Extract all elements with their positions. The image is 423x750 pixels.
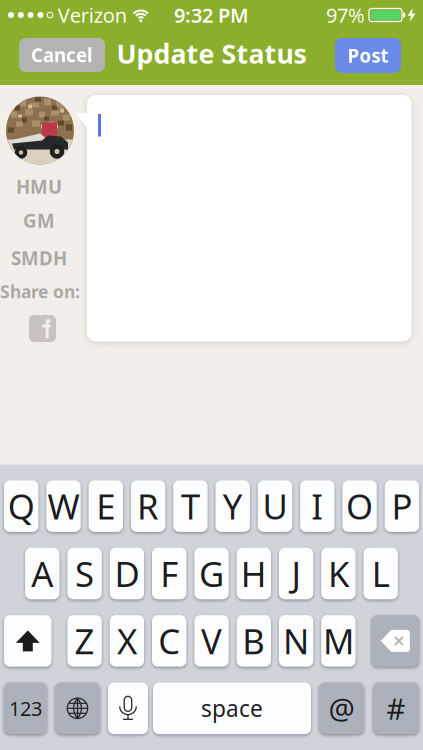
staticText: E <box>96 483 115 529</box>
staticText: F <box>160 550 178 596</box>
button[interactable]: SMDH <box>0 248 78 268</box>
button[interactable]: Y <box>215 480 250 532</box>
staticText: Update Status <box>116 36 306 71</box>
button[interactable]: # <box>373 682 419 734</box>
button[interactable]: I <box>300 480 334 532</box>
staticText: A <box>31 550 53 596</box>
staticText: M <box>323 618 354 664</box>
staticText: W <box>47 483 79 529</box>
button[interactable]: HMU <box>0 176 78 196</box>
button[interactable]: R <box>131 480 165 532</box>
staticText: GM <box>23 208 55 233</box>
button[interactable]: G <box>194 548 229 599</box>
button[interactable]: 123 <box>4 682 47 734</box>
staticText: 9:32 PM <box>174 2 249 28</box>
button[interactable]: GM <box>0 210 78 230</box>
button[interactable]: N <box>279 615 313 667</box>
staticText: I <box>311 483 323 529</box>
button[interactable]: U <box>258 480 292 532</box>
button[interactable]: Cancel <box>19 38 105 72</box>
button[interactable]: Profile photo <box>6 96 74 164</box>
staticText: K <box>328 550 349 596</box>
staticText: SMDH <box>11 246 67 270</box>
button[interactable]: P <box>385 480 419 532</box>
staticText: U <box>262 483 287 529</box>
staticText: O <box>346 483 373 529</box>
staticText: @ <box>328 689 354 728</box>
staticText: Cancel <box>31 43 93 67</box>
button[interactable]: O <box>342 480 377 532</box>
staticText: G <box>199 550 224 596</box>
staticText: # <box>386 689 405 728</box>
staticText: P <box>391 483 412 529</box>
button[interactable]: L <box>363 548 398 599</box>
staticText: J <box>292 550 301 596</box>
button[interactable]: Z <box>67 615 102 667</box>
button[interactable]: Next keyboard <box>55 682 100 734</box>
button[interactable]: Status text <box>87 95 411 341</box>
staticText: S <box>75 550 94 596</box>
button[interactable]: Post <box>335 38 401 73</box>
button[interactable]: Q <box>4 480 38 532</box>
button[interactable]: Share on Facebook <box>29 315 56 342</box>
staticText: T <box>181 483 200 529</box>
button[interactable]: V <box>194 615 229 667</box>
button[interactable]: B <box>237 615 271 667</box>
button[interactable]: D <box>110 548 144 599</box>
button[interactable]: E <box>89 480 123 532</box>
button[interactable]: K <box>321 548 356 599</box>
staticText: 97% <box>326 2 365 28</box>
button[interactable]: A <box>25 548 59 599</box>
button[interactable]: Dictate <box>108 682 148 734</box>
staticText: Share on: <box>0 280 80 303</box>
staticText: B <box>242 618 265 664</box>
staticText: Verizon <box>58 2 127 28</box>
button[interactable]: S <box>67 548 102 599</box>
button[interactable]: M <box>321 615 356 667</box>
staticText: R <box>137 483 159 529</box>
button[interactable]: T <box>173 480 208 532</box>
staticText: N <box>283 618 309 664</box>
button[interactable]: X <box>110 615 144 667</box>
button[interactable]: space <box>153 682 311 734</box>
button[interactable]: H <box>237 548 271 599</box>
staticText: 123 <box>9 695 42 722</box>
button[interactable]: @ <box>319 682 364 734</box>
staticText: C <box>158 618 180 664</box>
staticText: Y <box>223 483 243 529</box>
staticText: space <box>201 693 263 723</box>
staticText: Post <box>347 43 388 68</box>
staticText: Z <box>75 618 95 664</box>
staticText: V <box>201 618 222 664</box>
staticText: Q <box>8 483 35 529</box>
button[interactable]: C <box>152 615 186 667</box>
staticText: L <box>372 550 390 596</box>
staticText: X <box>117 618 137 664</box>
staticText: HMU <box>16 174 62 199</box>
staticText: D <box>114 550 139 596</box>
staticText: H <box>241 550 267 596</box>
button[interactable]: W <box>46 480 81 532</box>
button[interactable]: F <box>152 548 186 599</box>
button[interactable]: Delete <box>371 615 419 667</box>
button[interactable]: Shift <box>4 615 52 667</box>
button[interactable]: J <box>279 548 313 599</box>
